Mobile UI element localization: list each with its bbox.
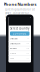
staticText: United Kingdom <box>10 43 20 45</box>
staticText: Spain <box>10 57 14 59</box>
button[interactable]: Continue <box>10 31 29 36</box>
staticText: +44 <box>26 43 29 45</box>
staticText: Select country <box>10 27 29 30</box>
staticText: United States <box>10 38 18 40</box>
button[interactable]: Germany <box>8 46 31 51</box>
staticText: +34 <box>26 57 29 59</box>
staticText: Lorem ipsum dolor sit amet, consectetur … <box>5 8 35 22</box>
staticText: Phone Numbers <box>3 1 36 7</box>
staticText: France <box>10 52 16 54</box>
staticText: +1 <box>27 38 29 40</box>
staticText: +33 <box>26 52 29 54</box>
button[interactable]: United States <box>8 37 31 41</box>
button[interactable]: France <box>8 51 31 56</box>
staticText: +49 <box>26 48 29 49</box>
staticText: Germany <box>10 48 17 49</box>
button[interactable]: Spain <box>8 56 31 61</box>
staticText: Continue <box>13 32 27 35</box>
button[interactable]: United Kingdom <box>8 41 31 46</box>
